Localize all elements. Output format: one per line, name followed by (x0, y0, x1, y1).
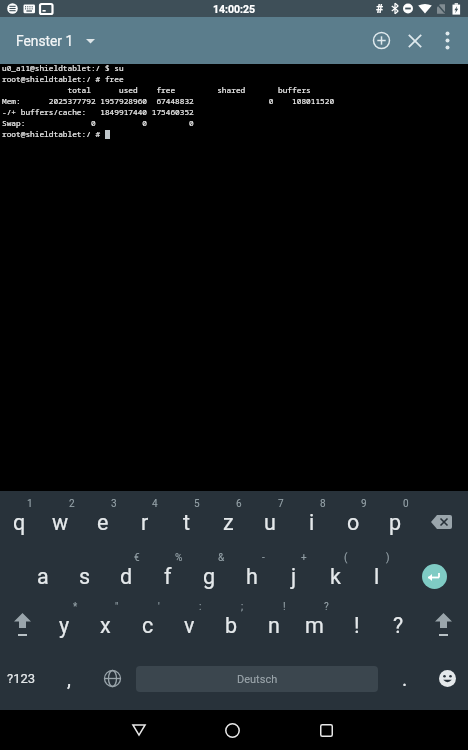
button[interactable]: f (147, 551, 188, 601)
staticText: g (203, 564, 216, 589)
staticText: s (79, 564, 91, 589)
button[interactable]: y (44, 600, 85, 650)
button[interactable]: g (189, 551, 230, 601)
button[interactable]: t (166, 497, 207, 547)
staticText: z (223, 510, 234, 535)
staticText: : (199, 601, 202, 613)
button[interactable]: l (356, 551, 397, 601)
button[interactable] (423, 600, 464, 650)
staticText: ) (386, 552, 390, 564)
button[interactable] (306, 710, 346, 750)
staticText: k (330, 564, 341, 589)
staticText: i (309, 510, 315, 535)
staticText: " (115, 601, 119, 613)
staticText: ?123 (7, 671, 36, 686)
button[interactable] (364, 23, 399, 58)
staticText: n (268, 613, 280, 638)
staticText: % (175, 552, 183, 564)
staticText: + (301, 552, 307, 564)
button[interactable]: c (127, 600, 168, 650)
staticText: a (37, 564, 49, 589)
staticText: o (347, 510, 360, 535)
staticText: 3 (111, 498, 117, 510)
button[interactable]: Fenster 1 (16, 33, 96, 49)
button[interactable]: z (208, 497, 249, 547)
staticText: ( (344, 552, 348, 564)
button[interactable]: ! (336, 600, 377, 650)
button[interactable]: w (40, 497, 81, 547)
button[interactable]: . (384, 653, 425, 703)
staticText: ? (393, 613, 404, 638)
staticText: d (120, 564, 133, 589)
button[interactable]: j (273, 551, 314, 601)
button[interactable] (92, 653, 133, 703)
staticText: root@shieldtablet:/ # free (2, 74, 124, 85)
button[interactable]: h (231, 551, 272, 601)
staticText: # (376, 2, 384, 16)
button[interactable]: x (85, 600, 126, 650)
staticText: Deutsch (237, 673, 278, 686)
button[interactable] (409, 551, 459, 601)
button[interactable] (427, 653, 468, 703)
button[interactable]: , (48, 653, 89, 703)
button[interactable]: b (211, 600, 252, 650)
button[interactable]: o (333, 497, 374, 547)
staticText: - (262, 552, 265, 564)
button[interactable]: s (64, 551, 105, 601)
staticText: ; (241, 601, 244, 613)
staticText: u (264, 510, 276, 535)
button[interactable]: ?123 (0, 653, 43, 703)
staticText: ! (354, 613, 360, 638)
staticText: p (389, 510, 402, 535)
button[interactable]: u (249, 497, 290, 547)
staticText: 4 (152, 498, 158, 510)
button[interactable] (421, 497, 462, 547)
staticText: Mem: 2025377792 1957928960 67448832 0 10… (2, 96, 335, 107)
staticText: , (67, 667, 71, 690)
staticText: w (52, 510, 69, 535)
staticText: Swap: 0 0 0 (2, 118, 194, 129)
staticText: l (374, 564, 380, 589)
staticText: b (225, 613, 238, 638)
staticText: -/+ buffers/cache: 1849917440 175460352 (2, 107, 194, 118)
staticText: 5 (194, 498, 200, 510)
staticText: 2 (69, 498, 75, 510)
button[interactable]: a (22, 551, 63, 601)
staticText: Fenster 1 (16, 33, 74, 49)
button[interactable]: r (124, 497, 165, 547)
staticText: e (97, 510, 109, 535)
button[interactable]: d (106, 551, 147, 601)
button[interactable]: i (291, 497, 332, 547)
staticText: 0 (403, 498, 409, 510)
button[interactable] (397, 23, 432, 58)
button[interactable]: m (294, 600, 335, 650)
staticText: t (183, 510, 191, 535)
button[interactable]: n (253, 600, 294, 650)
button[interactable]: k (315, 551, 356, 601)
button[interactable]: p (375, 497, 416, 547)
staticText: 7 (278, 498, 284, 510)
button[interactable]: v (169, 600, 210, 650)
staticText: v (184, 613, 195, 638)
button[interactable] (212, 710, 252, 750)
staticText: 8 (320, 498, 326, 510)
button[interactable] (119, 710, 159, 750)
button[interactable] (432, 23, 462, 58)
staticText: x (100, 613, 111, 638)
staticText: c (142, 613, 154, 638)
staticText: m (305, 613, 324, 638)
staticText: 6 (236, 498, 242, 510)
button[interactable]: ? (378, 600, 419, 650)
staticText: total used free shared buffers (2, 85, 311, 96)
button[interactable] (2, 600, 43, 650)
button[interactable]: q (0, 497, 40, 547)
staticText: ' (158, 601, 160, 613)
staticText: q (13, 510, 26, 535)
staticText: u0_a11@shieldtablet:/ $ su (2, 63, 124, 74)
button[interactable]: e (82, 497, 123, 547)
staticText: r (141, 510, 149, 535)
staticText: 1 (27, 498, 33, 510)
staticText: ! (283, 601, 286, 613)
button[interactable]: Deutsch (136, 666, 378, 692)
staticText: root@shieldtablet:/ # (2, 129, 105, 140)
